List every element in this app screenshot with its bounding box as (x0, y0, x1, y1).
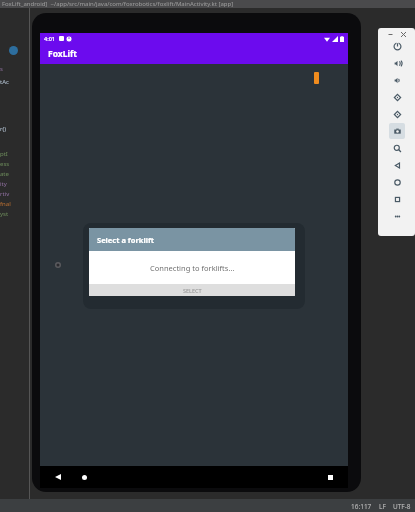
button[interactable]: More (389, 208, 405, 224)
staticText: FoxLift_android] ~/app/src/main/java/com… (2, 0, 234, 8)
staticText: rtiv (0, 190, 10, 198)
button[interactable]: Home (389, 174, 405, 190)
button[interactable]: Power (389, 38, 405, 54)
button[interactable]: Screenshot (389, 123, 405, 139)
button[interactable]: Volume up (389, 55, 405, 71)
button[interactable]: Rotate right (389, 106, 405, 122)
staticText: SELECT (183, 287, 202, 294)
staticText: 16:117 (351, 502, 372, 511)
button[interactable]: Recent apps (322, 469, 338, 485)
staticText: FoxLift (48, 48, 77, 60)
button[interactable]: Volume down (389, 72, 405, 88)
button[interactable]: Back (50, 469, 66, 485)
staticText: fnal (0, 200, 11, 208)
button[interactable]: Overview (389, 191, 405, 207)
button[interactable]: SELECT (89, 284, 295, 296)
staticText: ity (0, 180, 7, 188)
button[interactable]: Home (76, 469, 92, 485)
staticText: LF (379, 502, 386, 511)
staticText: ptI (0, 150, 8, 158)
staticText: Select a forklift (97, 235, 155, 245)
staticText: UTF-8 (393, 502, 411, 511)
button[interactable]: Back (389, 157, 405, 173)
button[interactable]: Minimize (388, 32, 393, 37)
staticText: 4:01 (44, 35, 55, 42)
staticText: r() (0, 125, 7, 133)
staticText: s (0, 65, 3, 73)
staticText: yst (0, 210, 9, 218)
button[interactable]: Close (401, 32, 406, 37)
staticText: ate (0, 170, 9, 178)
button[interactable]: Rotate left (389, 89, 405, 105)
staticText: ess (0, 160, 10, 168)
staticText: tAc (0, 78, 9, 86)
staticText: Connecting to forklifts... (150, 263, 235, 273)
button[interactable]: Zoom (389, 140, 405, 156)
button[interactable]: Connection indicator (314, 72, 319, 84)
